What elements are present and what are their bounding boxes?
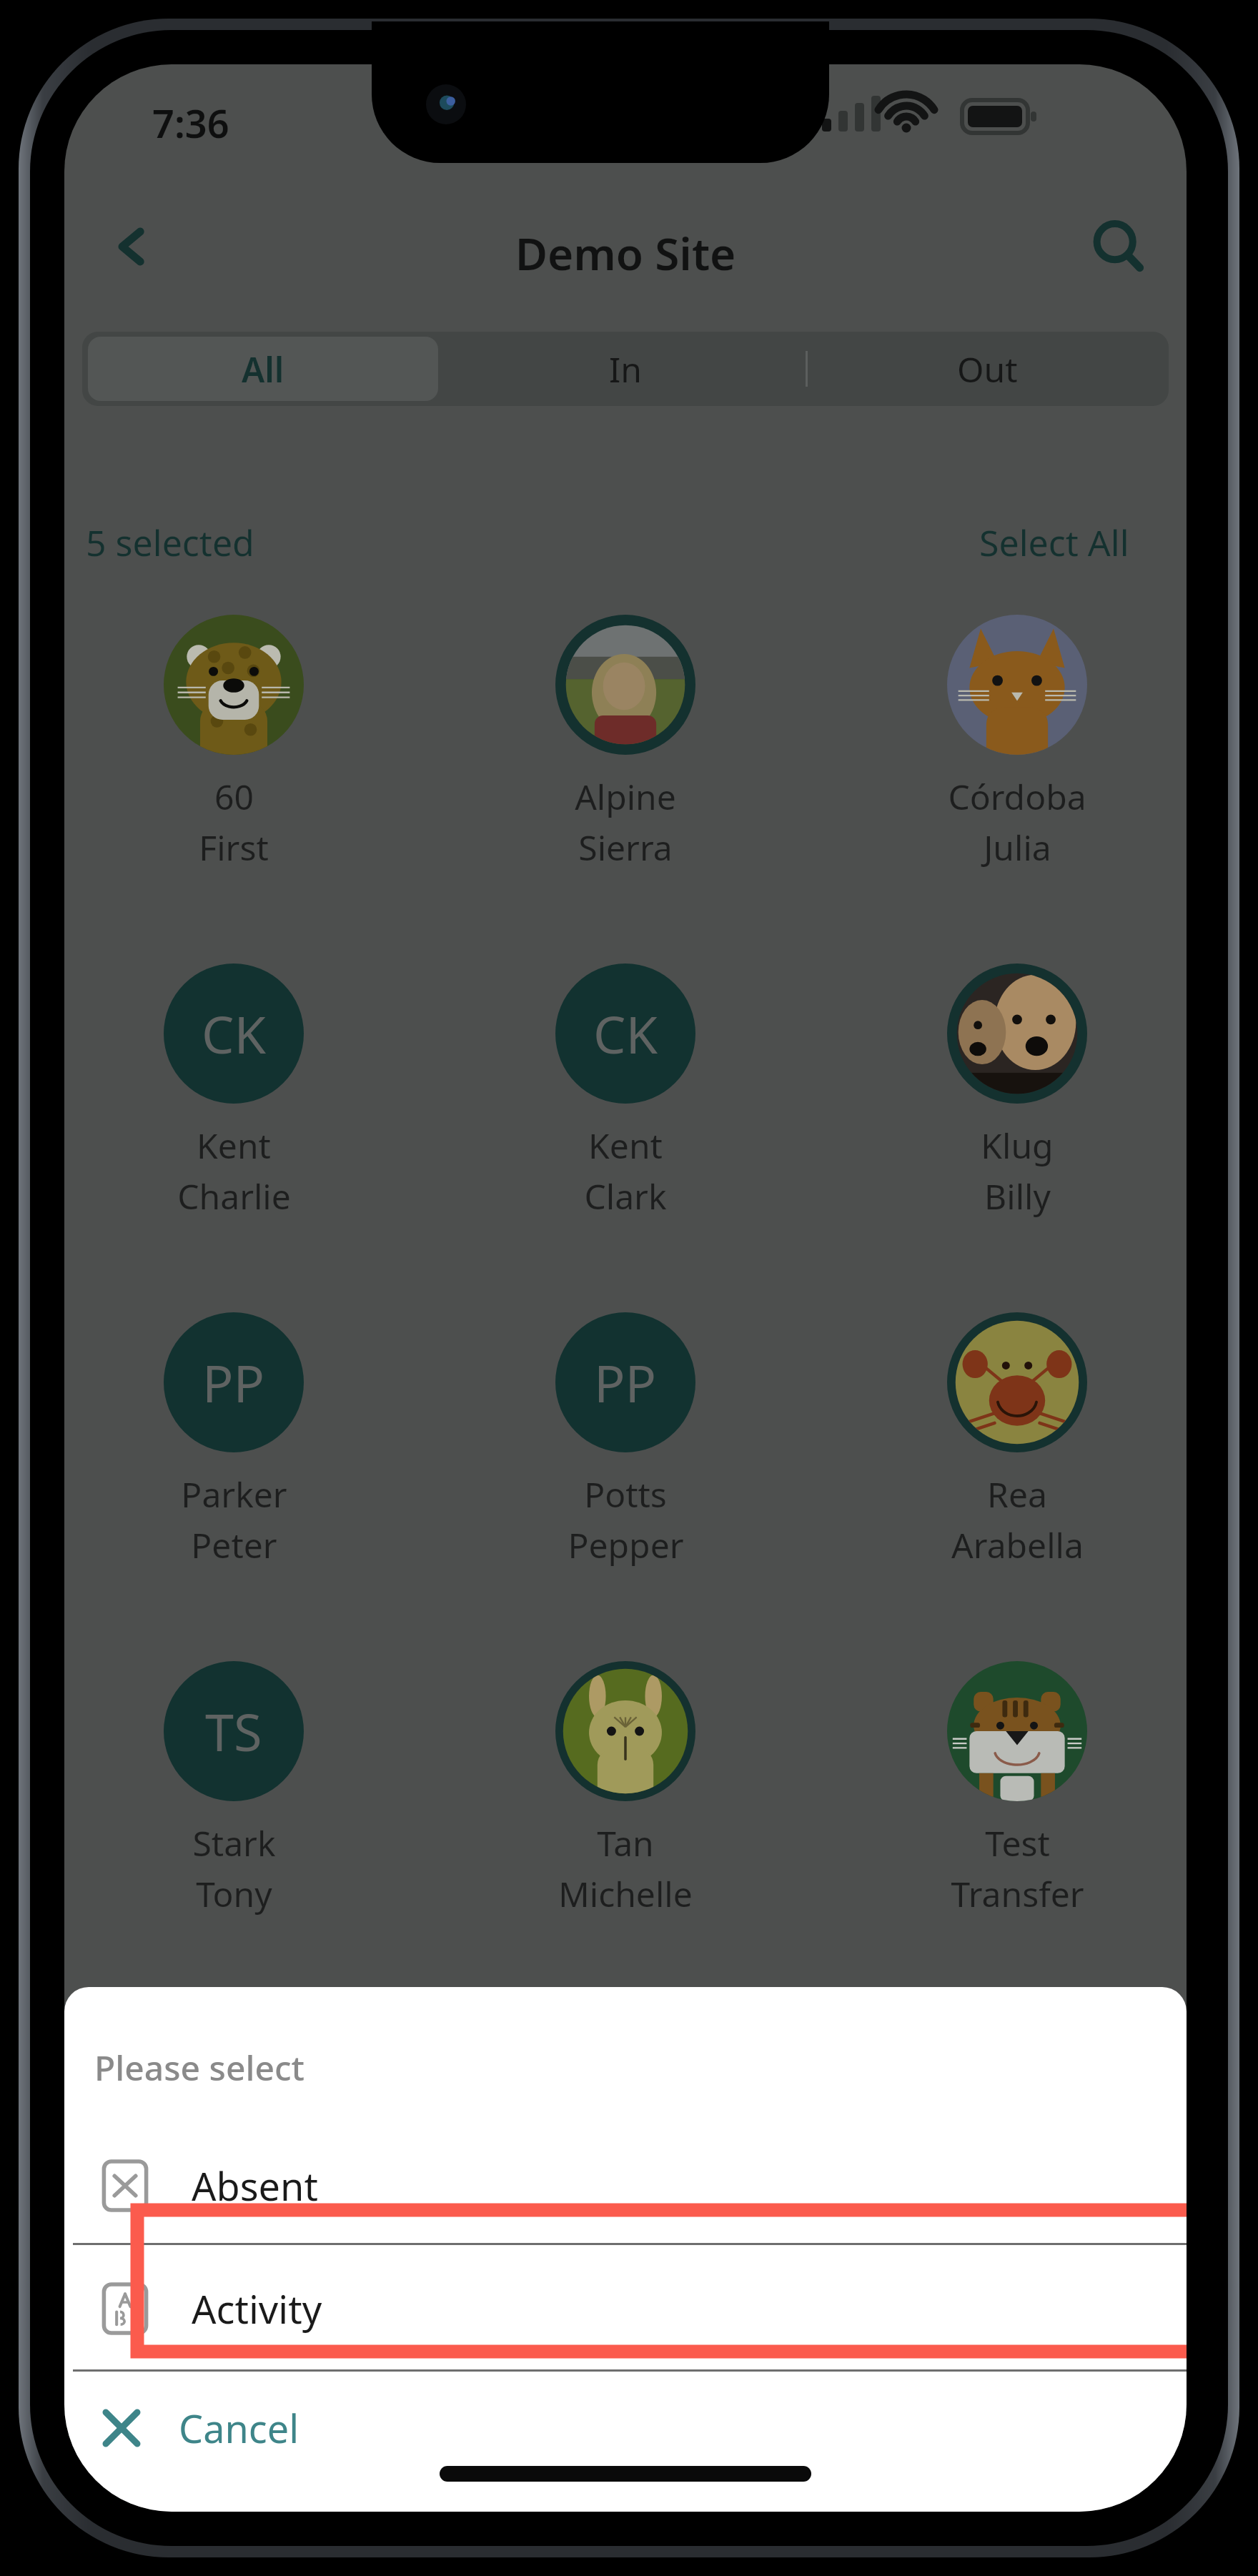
staticText: Demo Site [64, 223, 1187, 283]
button[interactable]: PP [129, 1312, 339, 1568]
staticText: Clark [584, 1173, 667, 1219]
staticText: Córdoba [948, 773, 1086, 820]
staticText: 7:36 [152, 96, 229, 149]
button[interactable]: Tan [520, 1661, 730, 1917]
staticText: Stark [192, 1820, 276, 1866]
staticText: First [199, 824, 269, 871]
button[interactable]: In [444, 332, 806, 406]
button[interactable]: 5 selected [86, 518, 254, 567]
button[interactable]: Test [912, 1661, 1122, 1917]
staticText: CK [593, 999, 658, 1069]
button[interactable]: Córdoba [912, 615, 1122, 871]
staticText: Kent [197, 1122, 271, 1169]
staticText: Please select [94, 2044, 304, 2091]
button[interactable]: Cancel [64, 2374, 1187, 2482]
staticText: Arabella [951, 1522, 1084, 1568]
staticText: Tan [597, 1820, 654, 1866]
staticText: Billy [984, 1173, 1051, 1219]
staticText: TS [205, 1696, 262, 1766]
staticText: Charlie [177, 1173, 291, 1219]
button[interactable]: Rea [912, 1312, 1122, 1568]
staticText: Sierra [578, 824, 673, 871]
staticText: Parker [181, 1471, 287, 1517]
staticText: PP [594, 1347, 657, 1417]
staticText: PP [202, 1347, 265, 1417]
button[interactable]: TS [129, 1661, 339, 1917]
staticText: In [609, 346, 642, 392]
staticText: Julia [984, 824, 1051, 871]
button[interactable]: All [82, 332, 444, 406]
staticText: Peter [191, 1522, 277, 1568]
button[interactable]: CK [129, 963, 339, 1219]
staticText: Potts [584, 1471, 667, 1517]
button[interactable]: Select All [979, 518, 1129, 567]
button[interactable]: Search [1065, 200, 1172, 293]
button[interactable]: 60 [129, 615, 339, 871]
button[interactable]: CK [520, 963, 730, 1219]
staticText: Absent [192, 2159, 318, 2212]
staticText: CK [202, 999, 267, 1069]
staticText: Kent [588, 1122, 663, 1169]
staticText: Transfer [951, 1871, 1084, 1917]
button[interactable]: Out [806, 332, 1169, 406]
staticText: Rea [987, 1471, 1047, 1517]
button[interactable]: Klug [912, 963, 1122, 1219]
staticText: Out [957, 346, 1018, 392]
staticText: Michelle [558, 1871, 693, 1917]
staticText: Alpine [575, 773, 676, 820]
staticText: Cancel [179, 2402, 299, 2454]
staticText: Test [985, 1820, 1050, 1866]
staticText: Activity [192, 2282, 322, 2335]
staticText: Klug [981, 1122, 1054, 1169]
staticText: 60 [214, 773, 254, 820]
button[interactable]: Back [79, 200, 186, 293]
staticText: Pepper [568, 1522, 684, 1568]
button[interactable]: Activity [64, 2246, 1187, 2372]
staticText: All [242, 346, 284, 392]
button[interactable]: Absent [64, 2130, 1187, 2241]
button[interactable]: Alpine [520, 615, 730, 871]
staticText: Tony [196, 1871, 272, 1917]
button[interactable]: PP [520, 1312, 730, 1568]
